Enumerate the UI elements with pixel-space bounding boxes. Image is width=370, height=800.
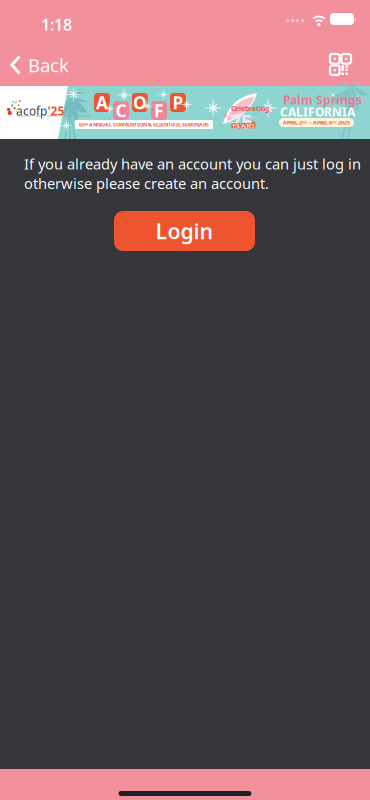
staticText: E xyxy=(237,122,240,129)
staticText: If you already have an account you can j… xyxy=(24,154,361,193)
staticText: CALIFORNIA xyxy=(280,104,355,120)
staticText: 1:18 xyxy=(41,14,72,35)
staticText: P xyxy=(172,91,183,114)
staticText: Y xyxy=(232,122,235,129)
staticText: 65ᵗʰ ANNUAL CONVENTION & SCIENTIFIC SEMI… xyxy=(79,121,209,128)
staticText: Login xyxy=(155,217,213,245)
staticText: Palm Springs xyxy=(283,92,362,108)
staticText: APRIL 2ᴺᴰ – APRIL 6ᵀᴴ 2025 xyxy=(283,119,350,126)
staticText: R xyxy=(247,122,250,129)
staticText: F xyxy=(154,99,164,122)
staticText: Celebrating xyxy=(231,104,269,113)
staticText: acofp xyxy=(16,103,47,119)
staticText: O xyxy=(133,91,147,114)
staticText: C xyxy=(115,99,126,122)
staticText: S xyxy=(252,122,255,129)
staticText: A xyxy=(96,91,108,114)
staticText: AMERICAN COLLEGE OF OSTEOPATHIC FAMILY P… xyxy=(17,114,90,117)
button[interactable]: Login xyxy=(114,211,255,251)
staticText: 75 xyxy=(230,108,252,135)
button[interactable]: Scan QR code xyxy=(320,44,361,85)
staticText: '25 xyxy=(47,103,64,119)
staticText: A xyxy=(241,122,245,129)
staticText: Back xyxy=(28,53,69,77)
button[interactable]: Back xyxy=(0,44,81,86)
